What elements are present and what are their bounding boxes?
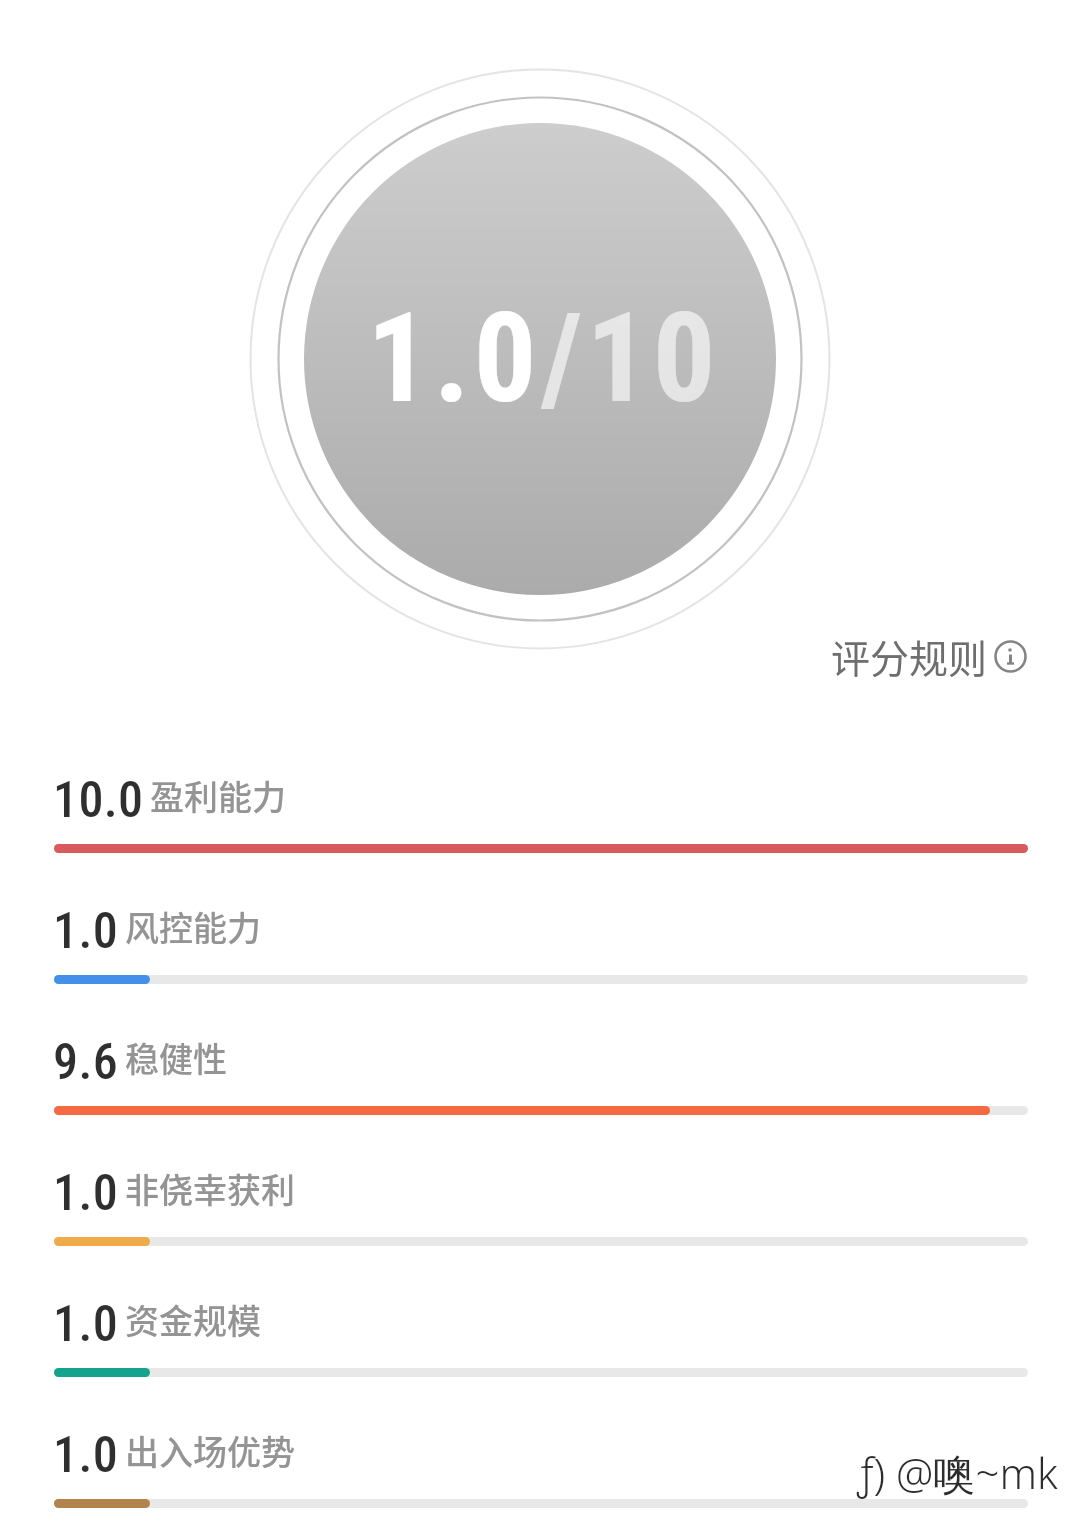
- staticText: /10: [541, 286, 720, 431]
- staticText: 1.0: [53, 902, 119, 961]
- button[interactable]: 1.0: [0, 1417, 1069, 1536]
- staticText: 风控能力: [125, 902, 261, 951]
- button[interactable]: 9.6: [0, 1024, 1069, 1155]
- button[interactable]: 1.0: [0, 1286, 1069, 1417]
- staticText: 9.6: [53, 1033, 119, 1092]
- staticText: 1.0: [53, 1295, 119, 1354]
- staticText: 出入场优势: [125, 1426, 295, 1475]
- staticText: 资金规模: [125, 1295, 261, 1344]
- staticText: 稳健性: [125, 1033, 227, 1082]
- button[interactable]: 1.0: [0, 1155, 1069, 1286]
- staticText: 非侥幸获利: [125, 1164, 295, 1213]
- staticText: 1.0: [53, 1164, 119, 1223]
- staticText: 1.0: [367, 286, 541, 431]
- staticText: 1.0: [53, 1426, 119, 1485]
- staticText: ƒ) @噢~mk: [857, 1444, 1058, 1501]
- staticText: 盈利能力: [150, 771, 286, 820]
- button[interactable]: 10.0: [0, 762, 1069, 893]
- button[interactable]: 综合评分 1.0 / 10: [249, 68, 831, 650]
- staticText: 评分规则: [831, 628, 988, 684]
- button[interactable]: 评分规则: [821, 619, 1037, 693]
- button[interactable]: 1.0: [0, 893, 1069, 1024]
- staticText: 10.0: [53, 771, 144, 830]
